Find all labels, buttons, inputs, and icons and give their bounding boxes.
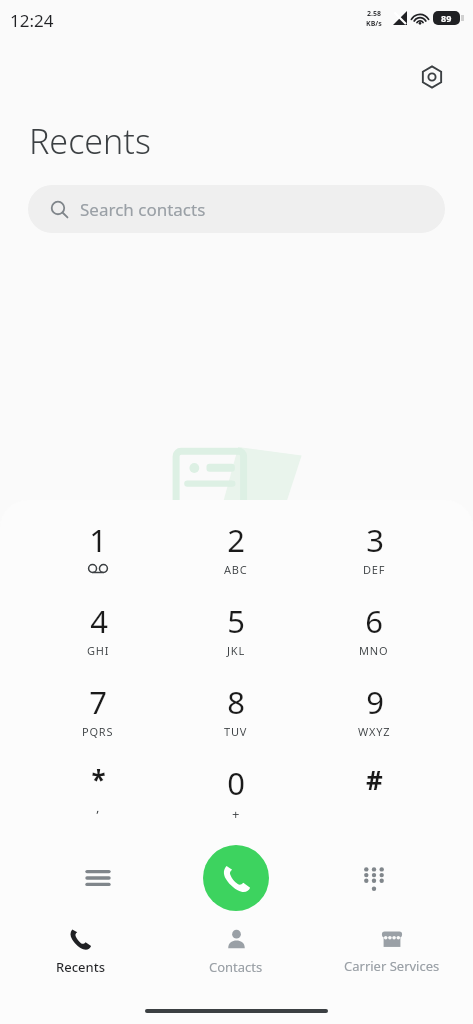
staticText: MNO bbox=[359, 643, 389, 658]
staticText: WXYZ bbox=[358, 724, 391, 739]
button[interactable]: 5 bbox=[190, 600, 282, 674]
button[interactable]: # bbox=[328, 762, 420, 836]
button[interactable]: Settings bbox=[408, 53, 456, 101]
button[interactable]: 6 bbox=[328, 600, 420, 674]
staticText: * bbox=[91, 762, 106, 797]
staticText: 89 bbox=[441, 12, 452, 24]
staticText: KB/s bbox=[366, 19, 382, 29]
staticText: Contacts bbox=[209, 958, 263, 976]
staticText: 12:24 bbox=[10, 9, 54, 32]
staticText: + bbox=[232, 805, 241, 823]
staticText: 4 bbox=[90, 600, 108, 642]
staticText: 9 bbox=[366, 681, 384, 723]
button[interactable]: Dialpad bbox=[346, 850, 402, 906]
staticText: Recents bbox=[56, 958, 105, 976]
button[interactable]: 0 bbox=[190, 762, 282, 836]
button[interactable]: 4 bbox=[52, 600, 144, 674]
button[interactable]: Call history options bbox=[70, 850, 126, 906]
staticText: GHI bbox=[87, 643, 110, 658]
staticText: TUV bbox=[224, 724, 248, 739]
button[interactable]: Search contacts bbox=[28, 185, 445, 233]
button[interactable]: 9 bbox=[328, 681, 420, 755]
button[interactable]: * bbox=[52, 762, 144, 836]
staticText: 2 bbox=[227, 519, 245, 561]
staticText: , bbox=[96, 798, 101, 816]
button[interactable]: 2 bbox=[190, 519, 282, 593]
button[interactable]: 8 bbox=[190, 681, 282, 755]
staticText: 6 bbox=[365, 600, 383, 642]
staticText: 3 bbox=[366, 519, 384, 561]
staticText: Recents bbox=[29, 118, 151, 164]
staticText: 7 bbox=[89, 681, 107, 723]
button[interactable]: 3 bbox=[328, 519, 420, 593]
staticText: PQRS bbox=[82, 724, 114, 739]
button[interactable]: Recents bbox=[10, 928, 150, 990]
button[interactable]: Call bbox=[203, 845, 269, 911]
button[interactable]: 7 bbox=[52, 681, 144, 755]
staticText: Search contacts bbox=[80, 198, 206, 221]
staticText: 1 bbox=[89, 519, 107, 561]
staticText: # bbox=[366, 762, 383, 797]
staticText: 0 bbox=[227, 762, 245, 804]
staticText: ABC bbox=[224, 562, 248, 577]
staticText: 2.58 bbox=[367, 9, 381, 19]
staticText: JKL bbox=[227, 643, 245, 658]
button[interactable]: Contacts bbox=[166, 928, 306, 990]
button[interactable]: Carrier Services bbox=[314, 928, 470, 990]
staticText: 5 bbox=[227, 600, 245, 642]
button[interactable]: 1 bbox=[52, 519, 144, 593]
staticText: Carrier Services bbox=[344, 957, 440, 975]
staticText: DEF bbox=[363, 562, 386, 577]
staticText: 8 bbox=[227, 681, 245, 723]
